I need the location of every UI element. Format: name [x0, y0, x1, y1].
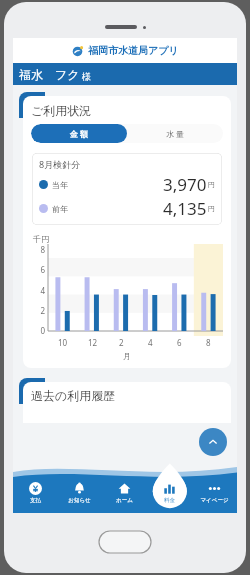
staticText: マイページ: [200, 497, 229, 504]
staticText: 様: [82, 71, 91, 82]
staticText: 過去の利用履歴: [31, 388, 116, 403]
staticText: ホーム: [116, 497, 133, 504]
button[interactable]: 過去の利用履歴: [31, 388, 223, 417]
staticText: 福水 フク: [19, 66, 80, 82]
staticText: 4,135: [163, 197, 207, 220]
staticText: 金 額: [70, 128, 89, 139]
staticText: 4: [40, 285, 45, 296]
staticText: 10: [58, 337, 68, 348]
staticText: 千円: [33, 234, 49, 244]
staticText: 8月検針分: [39, 158, 81, 170]
button[interactable]: ホーム: [102, 473, 147, 513]
staticText: 6: [177, 337, 182, 348]
button[interactable]: 福水 フク: [13, 63, 237, 85]
button[interactable]: マイページ: [192, 473, 237, 513]
staticText: 0: [40, 325, 45, 336]
staticText: 当年: [52, 180, 68, 190]
button[interactable]: Scroll to top: [199, 428, 227, 456]
staticText: お知らせ: [68, 497, 91, 504]
button[interactable]: 料金: [147, 473, 192, 513]
staticText: 福岡市水道局アプリ: [88, 44, 179, 57]
staticText: 2: [40, 305, 45, 316]
staticText: 円: [208, 204, 215, 213]
staticText: 前年: [52, 204, 68, 214]
staticText: 円: [208, 180, 215, 189]
staticText: 12: [88, 337, 98, 348]
staticText: 8: [40, 244, 45, 255]
button[interactable]: 金 額: [31, 124, 127, 143]
staticText: 支払: [30, 497, 41, 504]
staticText: 8: [206, 337, 211, 348]
staticText: 2: [119, 337, 124, 348]
staticText: 6: [40, 264, 45, 275]
button[interactable]: 水 量: [127, 124, 223, 143]
staticText: 3,970: [163, 173, 207, 196]
staticText: 水 量: [166, 128, 185, 139]
staticText: 料金: [164, 497, 175, 504]
staticText: 4: [148, 337, 153, 348]
staticText: 月: [123, 351, 131, 361]
button[interactable]: 支払: [13, 473, 57, 513]
button[interactable]: お知らせ: [57, 473, 102, 513]
staticText: ご利用状況: [31, 103, 92, 118]
